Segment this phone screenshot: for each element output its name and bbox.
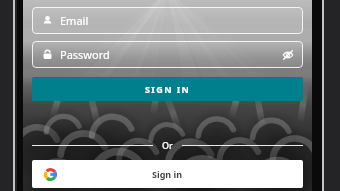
button[interactable]: Password [32, 41, 303, 68]
button[interactable]: Sign in [32, 160, 303, 188]
button[interactable]: Email [32, 7, 303, 34]
staticText: Or [162, 139, 173, 151]
staticText: Sign in [152, 168, 183, 180]
staticText: Email [60, 13, 89, 28]
staticText: SIGN IN [145, 83, 191, 95]
staticText: Password [60, 47, 277, 62]
button[interactable]: SIGN IN [32, 77, 303, 101]
button[interactable]: Show password [277, 44, 299, 66]
